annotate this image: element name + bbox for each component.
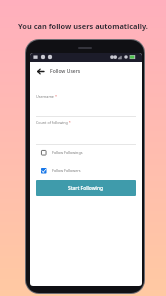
staticText: Count of following * <box>36 120 71 125</box>
button[interactable]: Start Following <box>36 180 136 196</box>
button[interactable]: Follow Followers <box>41 167 101 174</box>
button[interactable]: Follow Followings <box>41 149 101 156</box>
staticText: You can follow users automatically. <box>0 21 166 31</box>
staticText: Follow Followers <box>52 168 81 173</box>
staticText: Start Following <box>68 185 104 192</box>
staticText: Username * <box>36 94 57 99</box>
button[interactable]: Back <box>34 65 47 78</box>
staticText: Follow Followings <box>52 150 83 155</box>
staticText: Follow Users <box>50 68 81 75</box>
